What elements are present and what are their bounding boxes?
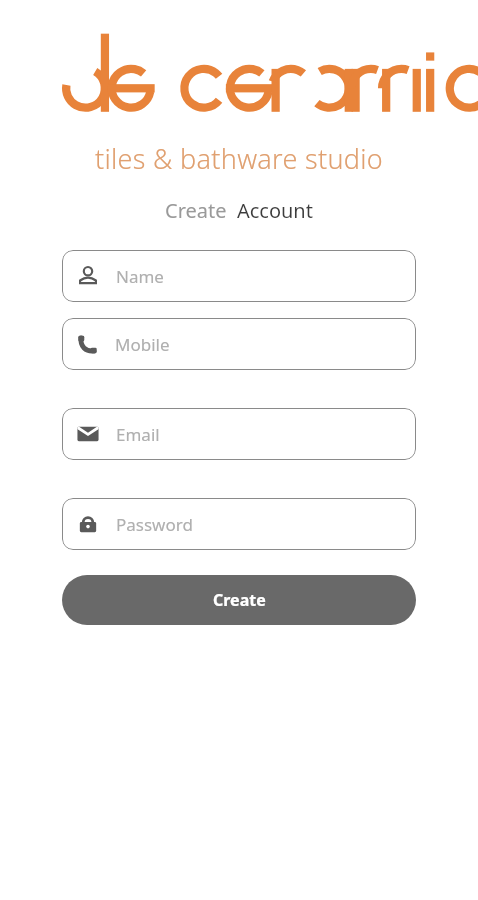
staticText: Name [116,265,164,288]
button[interactable]: Password [62,498,416,550]
staticText: Create [213,589,266,611]
staticText: tiles & bathware studio [95,140,384,177]
staticText: Email [116,423,160,446]
button[interactable]: Mobile [62,318,416,370]
staticText: Mobile [115,333,170,356]
other: Email [76,422,100,446]
button[interactable]: Create [62,575,416,625]
staticText: Create Account [165,197,313,224]
other: Mobile [76,333,99,356]
button[interactable]: Name [62,250,416,302]
other: Password [76,512,100,536]
button[interactable]: Email [62,408,416,460]
other: Name [76,264,100,288]
staticText: Password [116,513,193,536]
